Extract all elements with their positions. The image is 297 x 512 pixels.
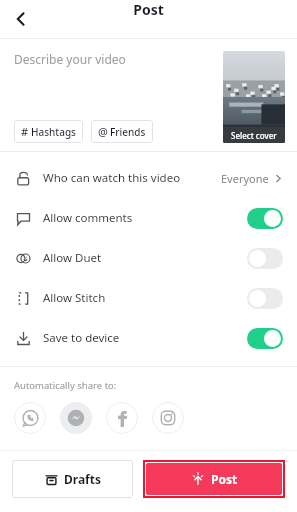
- staticText: Select cover: [231, 130, 277, 141]
- button[interactable]: Allow Stitch: [0, 278, 297, 318]
- staticText: Hashtags: [31, 125, 76, 139]
- button[interactable]: Describe your video: [14, 51, 213, 120]
- button[interactable]: #: [14, 120, 83, 143]
- staticText: Allow Duet: [43, 250, 247, 266]
- staticText: Drafts: [64, 471, 101, 487]
- button[interactable]: Messenger: [60, 402, 92, 434]
- button[interactable]: Who can watch this video: [0, 158, 297, 198]
- staticText: Everyone: [221, 171, 269, 186]
- staticText: @: [98, 124, 108, 139]
- button[interactable]: Off: [247, 288, 283, 309]
- button[interactable]: Select cover: [223, 51, 285, 143]
- button[interactable]: Drafts: [12, 460, 133, 498]
- button[interactable]: Save to device: [0, 318, 297, 358]
- staticText: Who can watch this video: [43, 170, 221, 186]
- staticText: Allow comments: [43, 210, 247, 226]
- button[interactable]: Post: [146, 463, 282, 495]
- button[interactable]: Allow comments: [0, 198, 297, 238]
- button[interactable]: Allow Duet: [0, 238, 297, 278]
- button[interactable]: On: [247, 208, 283, 229]
- button[interactable]: Off: [247, 248, 283, 269]
- staticText: Save to device: [43, 330, 247, 346]
- staticText: #: [21, 124, 29, 139]
- staticText: Describe your video: [14, 51, 126, 67]
- button[interactable]: @: [91, 120, 153, 143]
- button[interactable]: WhatsApp: [14, 402, 46, 434]
- staticText: Post: [211, 471, 238, 487]
- button[interactable]: Facebook: [106, 402, 138, 434]
- staticText: Friends: [110, 125, 146, 139]
- button[interactable]: On: [247, 328, 283, 349]
- staticText: Automatically share to:: [14, 379, 117, 392]
- button[interactable]: Instagram: [152, 402, 184, 434]
- staticText: Allow Stitch: [43, 290, 247, 306]
- button[interactable]: Back: [4, 2, 38, 36]
- staticText: Post: [133, 0, 164, 19]
